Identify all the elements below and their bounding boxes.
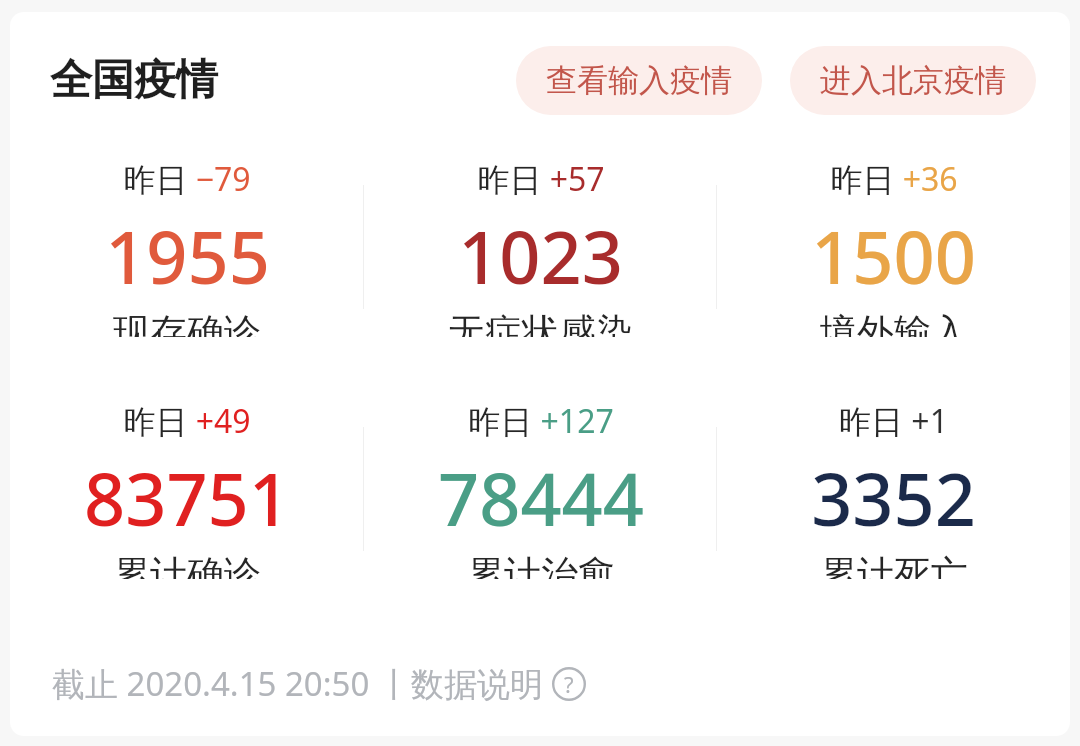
staticText: 查看输入疫情	[546, 61, 732, 100]
staticText: 无症状感染	[448, 309, 633, 337]
button[interactable]: 昨日 +127	[364, 399, 717, 579]
staticText: ?	[564, 669, 574, 699]
staticText: 昨日 −79	[123, 157, 251, 201]
button[interactable]: 昨日 +1	[717, 399, 1070, 579]
staticText: 昨日 +57	[477, 157, 605, 201]
button[interactable]: 数据说明	[552, 667, 586, 701]
staticText: 83751	[84, 449, 290, 547]
staticText: 全国疫情	[50, 54, 218, 107]
button[interactable]: 进入北京疫情	[790, 46, 1036, 115]
staticText: 累计确诊	[113, 551, 261, 579]
staticText: 1500	[811, 207, 976, 305]
staticText: 境外输入	[820, 309, 968, 337]
button[interactable]: 查看输入疫情	[516, 46, 762, 115]
staticText: 1023	[458, 207, 623, 305]
staticText: 截止 2020.4.15 20:50 丨数据说明	[52, 661, 552, 706]
staticText: 1955	[105, 207, 270, 305]
staticText: 3352	[811, 449, 976, 547]
staticText: 78444	[438, 449, 644, 547]
button[interactable]: 昨日 +36	[717, 157, 1070, 337]
staticText: 昨日 +1	[839, 399, 948, 443]
staticText: 现存确诊	[113, 309, 261, 337]
staticText: 昨日 +127	[468, 399, 614, 443]
staticText: 累计治愈	[467, 551, 615, 579]
staticText: 累计死亡	[820, 551, 968, 579]
button[interactable]: 昨日 −79	[10, 157, 364, 337]
staticText: 进入北京疫情	[820, 61, 1006, 100]
button[interactable]: 昨日 +49	[10, 399, 364, 579]
staticText: 昨日 +49	[123, 399, 251, 443]
staticText: 昨日 +36	[830, 157, 958, 201]
button[interactable]: 昨日 +57	[364, 157, 717, 337]
